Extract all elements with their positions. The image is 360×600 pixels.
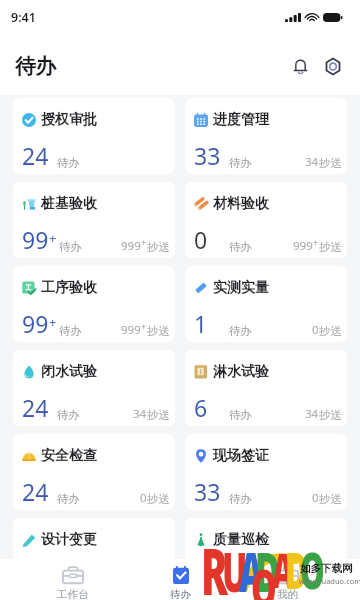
staticText: 待办 [229,576,252,590]
staticText: 工序验收 [41,279,97,297]
staticText: + [141,236,147,249]
button[interactable]: 材料验收 [185,182,347,258]
staticText: 抄送 [147,240,170,254]
staticText: 我的 [277,588,298,600]
staticText: 抄送 [319,240,342,254]
staticText: 抄送 [147,408,170,422]
button[interactable]: 桩基验收 [13,182,175,258]
button[interactable]: 安全检查 [13,434,175,510]
staticText: 待办 [229,408,252,422]
staticText: + [313,236,319,249]
staticText: 待办 [59,240,82,254]
button[interactable]: 质量巡检 [185,518,347,594]
staticText: 3 [194,560,208,591]
staticText: 34 [305,406,319,422]
staticText: 授权审批 [41,111,97,129]
staticText: 桩基验收 [41,195,97,213]
button[interactable]: 工序验收 [13,266,175,342]
button[interactable]: 授权审批 [13,98,175,174]
staticText: D [255,533,280,600]
staticText: 待办 [229,492,252,506]
staticText: D [285,536,308,600]
staticText: 9:41 [11,9,36,26]
button[interactable]: 待办 [127,559,234,600]
staticText: www.ruaduo.com [299,576,360,586]
staticText: 34 [133,406,147,422]
staticText: 0 [194,224,208,255]
button[interactable]: 我的 [234,559,341,600]
button[interactable]: 现场签证 [185,434,347,510]
staticText: O [251,551,277,600]
staticText: 待办 [15,53,56,79]
staticText: 待办 [229,324,252,338]
staticText: 材料验收 [213,195,269,213]
staticText: 24 [22,392,49,423]
staticText: 33 [194,140,221,171]
button[interactable]: Notifications [287,53,313,79]
staticText: 现场签证 [213,447,269,465]
button[interactable]: Settings [320,53,346,79]
staticText: 待办 [59,324,82,338]
staticText: 0 [312,574,319,590]
staticText: R [201,527,228,600]
staticText: 待办 [57,408,80,422]
staticText: 24 [22,476,49,507]
staticText: 待办 [57,156,80,170]
staticText: + [141,320,147,333]
staticText: 质量巡检 [213,531,269,549]
staticText: U [222,534,247,600]
staticText: 待办 [229,240,252,254]
staticText: 99 [22,308,49,339]
staticText: 待办 [57,576,80,590]
staticText: 6 [194,392,208,423]
staticText: 抄送 [319,492,342,506]
staticText: 闭水试验 [41,363,97,381]
staticText: 99 [22,224,49,255]
staticText: 34 [305,154,319,170]
staticText: 安全检查 [41,447,97,465]
staticText: + [49,229,57,247]
staticText: 0 [312,490,319,506]
staticText: 抄送 [319,408,342,422]
staticText: 抄送 [319,576,342,590]
staticText: 抄送 [147,324,170,338]
button[interactable]: 设计变更 [13,518,175,594]
staticText: 抄送 [319,324,342,338]
staticText: + [49,313,57,331]
staticText: 0 [140,490,147,506]
button[interactable]: 淋水试验 [185,350,347,426]
button[interactable]: 闭水试验 [13,350,175,426]
staticText: 抄送 [319,156,342,170]
staticText: 工作台 [57,588,89,600]
staticText: 999 [121,238,141,254]
staticText: 33 [194,476,221,507]
button[interactable]: 实测实量 [185,266,347,342]
staticText: 如多下载网 [300,562,353,575]
staticText: 进度管理 [213,111,269,129]
staticText: A [239,534,264,600]
staticText: 1 [194,308,208,339]
staticText: A [272,537,294,600]
staticText: 实测实量 [213,279,269,297]
staticText: 待办 [229,156,252,170]
staticText: 待办 [57,492,80,506]
staticText: 抄送 [147,492,170,506]
staticText: 999 [293,238,313,254]
staticText: 24 [22,140,49,171]
staticText: 999 [121,322,141,338]
staticText: 设计变更 [41,531,97,549]
button[interactable]: 进度管理 [185,98,347,174]
button[interactable]: 工作台 [19,559,127,600]
staticText: 0 [312,322,319,338]
staticText: 待办 [170,588,191,600]
staticText: 淋水试验 [213,363,269,381]
staticText: O [300,536,325,600]
